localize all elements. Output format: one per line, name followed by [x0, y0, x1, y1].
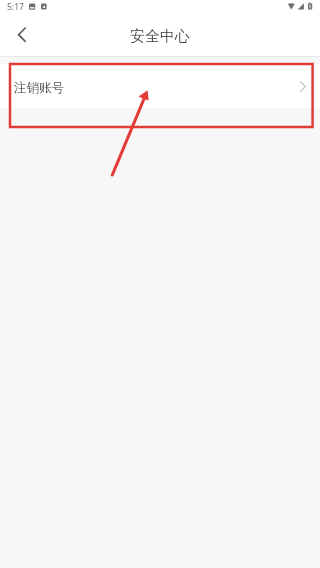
staticText: 5:17	[7, 1, 24, 13]
button[interactable]: Back	[0, 18, 42, 56]
staticText: 注销账号	[14, 80, 64, 96]
button[interactable]: 注销账号	[0, 64, 320, 108]
staticText: 安全中心	[130, 27, 190, 46]
